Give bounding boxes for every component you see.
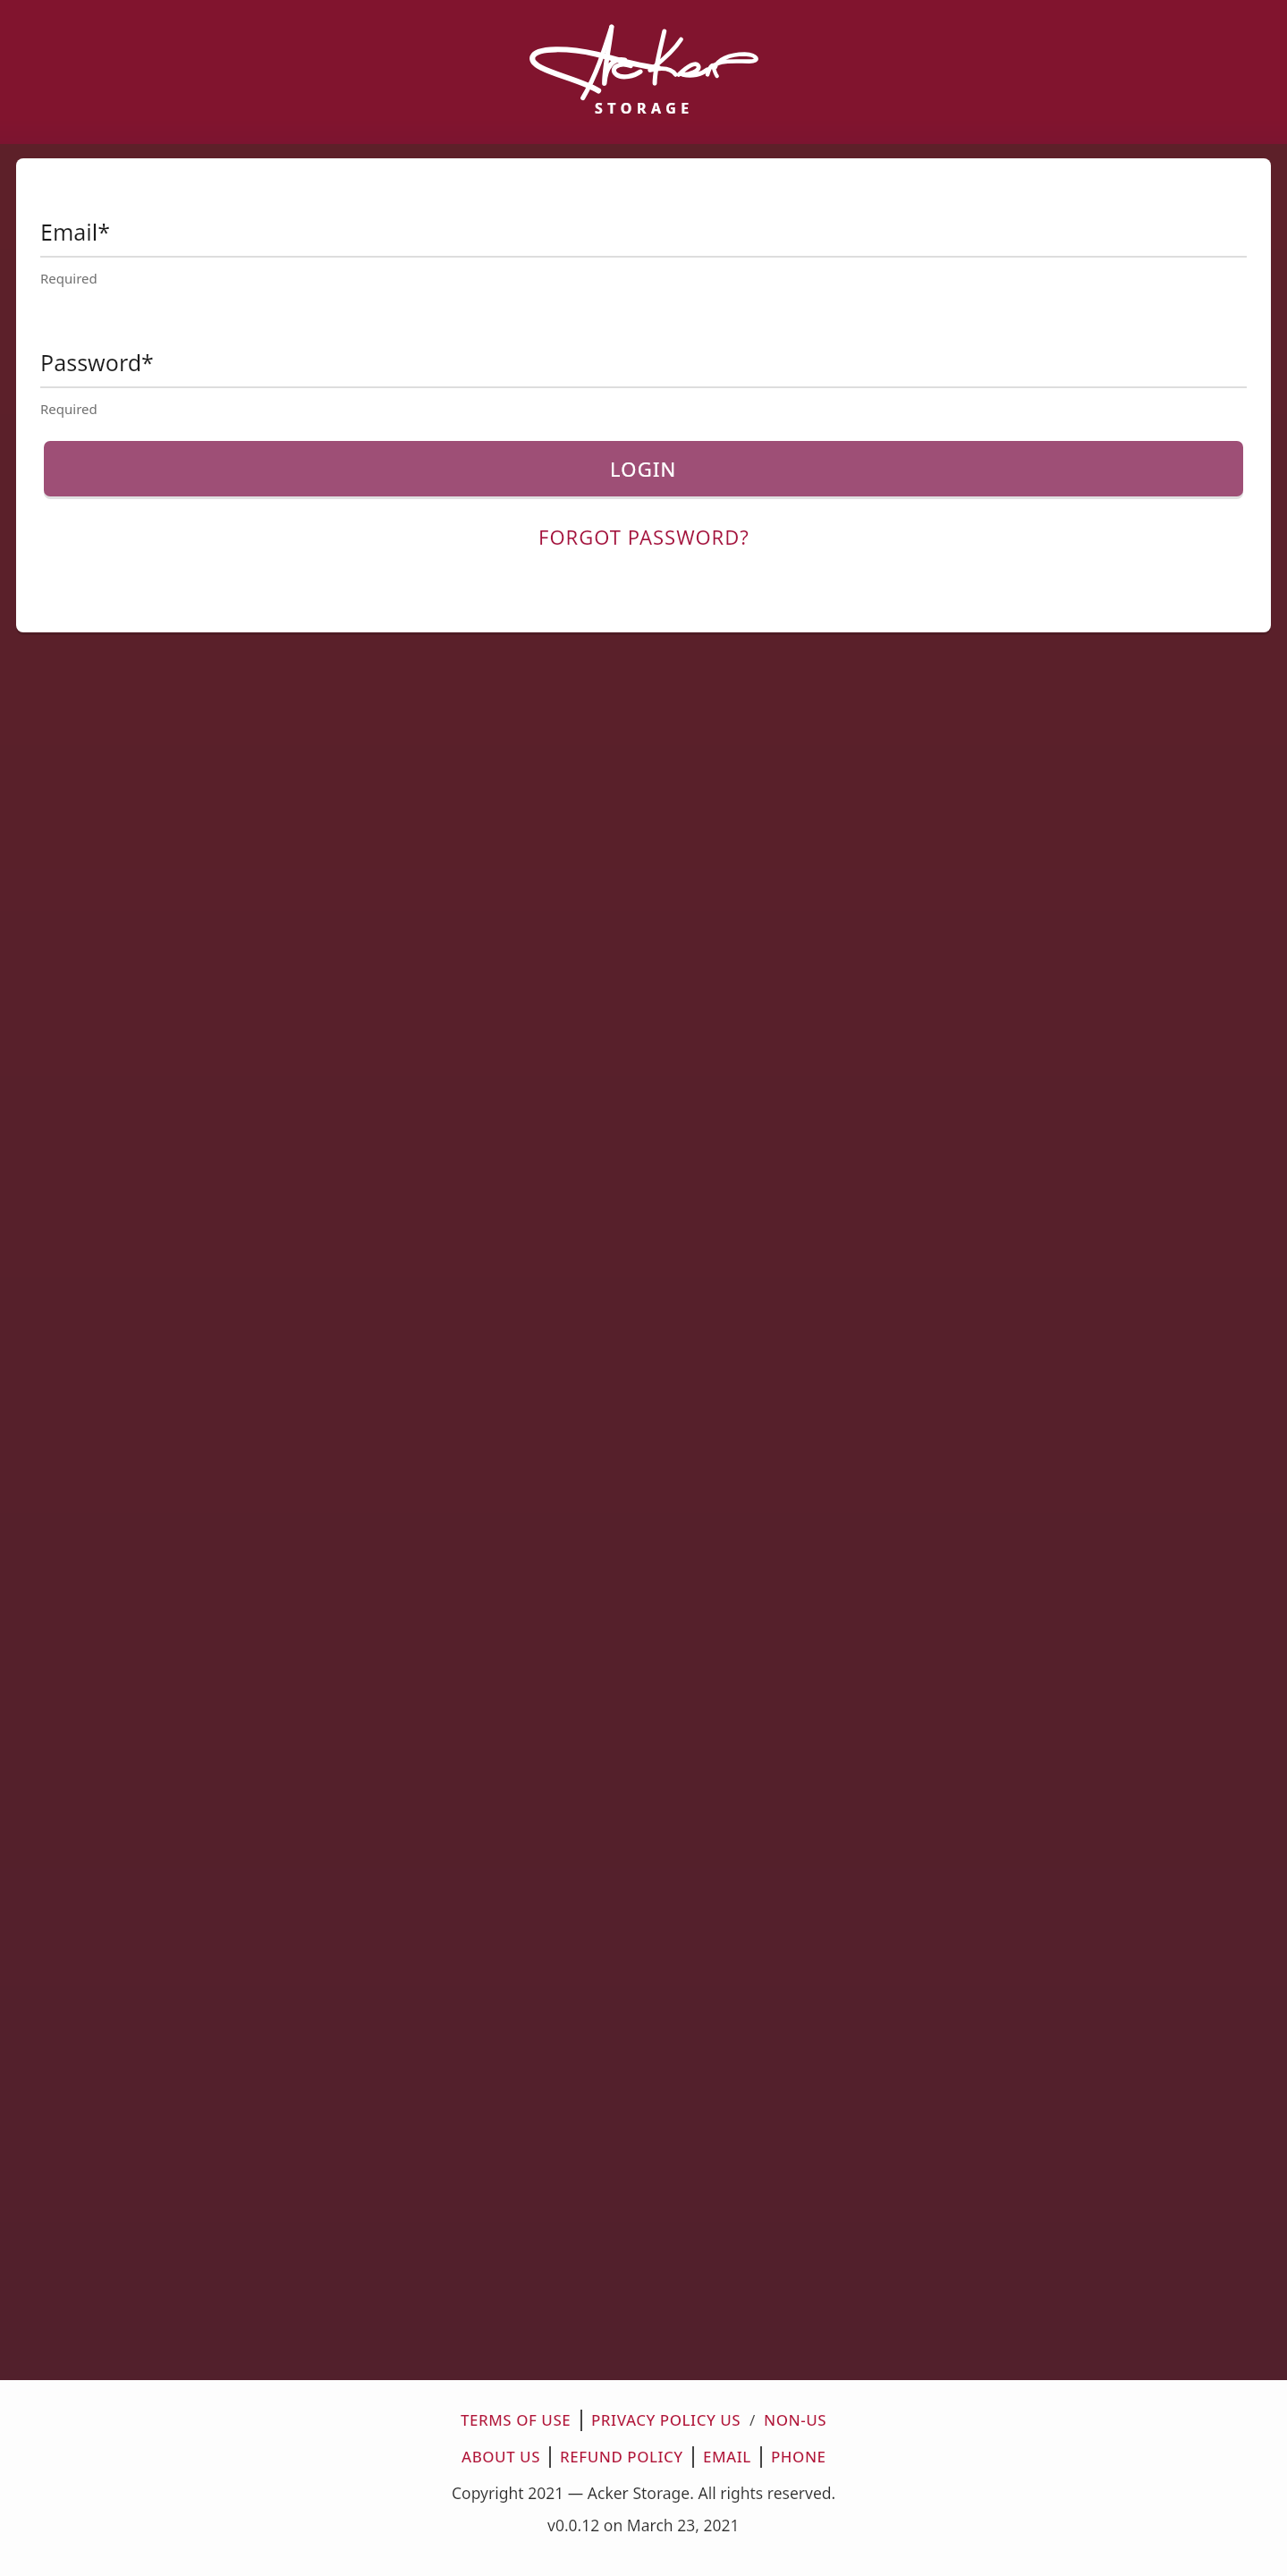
staticText: PHONE xyxy=(771,2446,826,2467)
button[interactable]: REFUND POLICY xyxy=(558,2444,685,2470)
staticText: TERMS OF USE xyxy=(461,2410,572,2430)
button[interactable]: FORGOT PASSWORD? xyxy=(16,511,1271,563)
staticText: Copyright 2021 — Acker Storage. All righ… xyxy=(452,2482,836,2504)
staticText: FORGOT PASSWORD? xyxy=(538,523,749,550)
button[interactable]: PRIVACY POLICY US xyxy=(589,2407,743,2433)
staticText: LOGIN xyxy=(610,455,677,482)
staticText: ABOUT US xyxy=(461,2446,540,2467)
staticText: Email* xyxy=(40,216,110,247)
button[interactable]: NON-US xyxy=(762,2407,829,2433)
staticText: Required xyxy=(40,269,97,287)
staticText: NON-US xyxy=(764,2410,827,2430)
staticText: EMAIL xyxy=(703,2446,751,2467)
staticText: REFUND POLICY xyxy=(560,2446,683,2467)
staticText: Password* xyxy=(40,347,154,377)
staticText: Required xyxy=(40,400,97,418)
staticText: PRIVACY POLICY US xyxy=(591,2410,741,2430)
button[interactable]: ABOUT US xyxy=(460,2444,542,2470)
button[interactable]: EMAIL xyxy=(701,2444,753,2470)
staticText: / xyxy=(749,2410,756,2430)
staticText: STORAGE xyxy=(595,98,694,118)
button[interactable]: LOGIN xyxy=(44,441,1243,496)
button[interactable]: TERMS OF USE xyxy=(459,2407,573,2433)
button[interactable]: PHONE xyxy=(769,2444,828,2470)
staticText: v0.0.12 on March 23, 2021 xyxy=(547,2514,740,2536)
